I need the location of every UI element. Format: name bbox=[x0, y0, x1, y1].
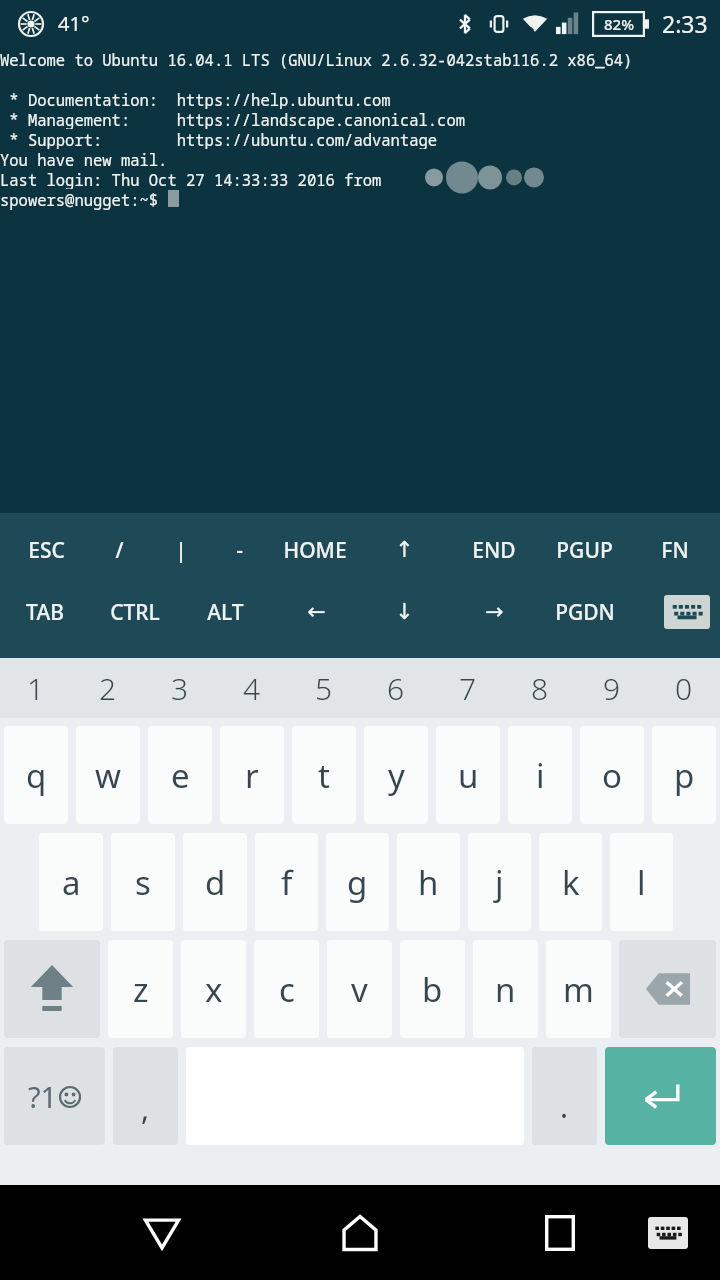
staticText: FN bbox=[661, 536, 689, 565]
button[interactable]: ↑ bbox=[366, 519, 442, 581]
button[interactable]: j bbox=[468, 833, 531, 931]
button[interactable]: END bbox=[456, 519, 532, 581]
button[interactable]: 8 bbox=[504, 658, 576, 718]
staticText: v bbox=[351, 967, 368, 1012]
button[interactable]: / bbox=[81, 519, 157, 581]
staticText: m bbox=[563, 967, 594, 1012]
staticText: 3 bbox=[171, 668, 189, 709]
button[interactable]: Recent apps bbox=[520, 1193, 600, 1273]
button[interactable]: Enter bbox=[605, 1047, 716, 1145]
button[interactable]: z bbox=[108, 940, 173, 1038]
button[interactable]: | bbox=[143, 519, 219, 581]
button[interactable]: m bbox=[546, 940, 611, 1038]
button[interactable]: Back bbox=[122, 1193, 202, 1273]
button[interactable]: s bbox=[111, 833, 175, 931]
button[interactable]: l bbox=[610, 833, 673, 931]
staticText: 9 bbox=[603, 668, 621, 709]
staticText: e bbox=[171, 753, 190, 798]
button[interactable]: d bbox=[183, 833, 247, 931]
staticText: ↑ bbox=[395, 537, 414, 563]
button[interactable]: f bbox=[255, 833, 318, 931]
button[interactable]: 6 bbox=[360, 658, 432, 718]
button[interactable]: Switch keyboard bbox=[636, 1201, 700, 1265]
button[interactable]: i bbox=[508, 726, 572, 824]
staticText: t bbox=[318, 753, 330, 798]
button[interactable]: ?1 bbox=[4, 1047, 105, 1145]
staticText: l bbox=[637, 860, 646, 905]
button[interactable]: o bbox=[580, 726, 644, 824]
staticText: 41° bbox=[58, 10, 90, 37]
staticText: , bbox=[141, 1088, 150, 1129]
staticText: b bbox=[422, 967, 443, 1012]
button[interactable]: Backspace bbox=[619, 940, 716, 1038]
button[interactable]: FN bbox=[637, 519, 713, 581]
staticText: 2:33 bbox=[662, 8, 708, 39]
button[interactable]: t bbox=[292, 726, 356, 824]
button[interactable]: a bbox=[39, 833, 103, 931]
button[interactable]: 2 bbox=[72, 658, 144, 718]
button[interactable]: 7 bbox=[432, 658, 504, 718]
button[interactable]: h bbox=[397, 833, 460, 931]
button[interactable]: Shift bbox=[4, 940, 100, 1038]
button[interactable]: PGUP bbox=[546, 519, 622, 581]
button[interactable]: c bbox=[254, 940, 319, 1038]
button[interactable]: Welcome to Ubuntu 16.04.1 LTS (GNU/Linux… bbox=[0, 46, 720, 513]
staticText: h bbox=[418, 860, 439, 905]
button[interactable]: ← bbox=[278, 581, 354, 643]
staticText: ← bbox=[307, 599, 326, 625]
staticText: w bbox=[95, 753, 121, 798]
staticText: ESC bbox=[28, 536, 65, 565]
staticText: r bbox=[245, 753, 259, 798]
staticText: 5 bbox=[315, 668, 333, 709]
button[interactable]: w bbox=[76, 726, 140, 824]
button[interactable]: Home bbox=[320, 1193, 400, 1273]
button[interactable]: 4 bbox=[216, 658, 288, 718]
staticText: n bbox=[495, 967, 516, 1012]
button[interactable]: v bbox=[327, 940, 392, 1038]
staticText: z bbox=[133, 967, 149, 1012]
staticText: k bbox=[562, 860, 580, 905]
button[interactable]: e bbox=[148, 726, 212, 824]
staticText: spowers@nugget:~$ bbox=[0, 189, 168, 210]
staticText: → bbox=[485, 599, 504, 625]
button[interactable]: , bbox=[113, 1047, 178, 1145]
staticText: f bbox=[281, 860, 293, 905]
button[interactable]: 5 bbox=[288, 658, 360, 718]
button[interactable]: u bbox=[436, 726, 500, 824]
button[interactable]: CTRL bbox=[97, 581, 173, 643]
button[interactable]: 3 bbox=[144, 658, 216, 718]
button[interactable]: q bbox=[4, 726, 68, 824]
staticText: * Support: https://ubuntu.com/advantage bbox=[0, 129, 438, 149]
button[interactable]: ↓ bbox=[366, 581, 442, 643]
button[interactable]: 1 bbox=[0, 658, 72, 718]
button[interactable]: PGDN bbox=[547, 581, 623, 643]
button[interactable]: - bbox=[201, 519, 277, 581]
staticText: . bbox=[560, 1086, 569, 1127]
staticText: / bbox=[115, 536, 124, 565]
button[interactable]: TAB bbox=[7, 581, 83, 643]
button[interactable]: Hide keyboard bbox=[664, 595, 710, 629]
button[interactable]: 9 bbox=[576, 658, 648, 718]
staticText: p bbox=[674, 753, 695, 798]
button[interactable]: y bbox=[364, 726, 428, 824]
staticText: CTRL bbox=[110, 598, 160, 627]
button[interactable]: n bbox=[473, 940, 538, 1038]
button[interactable]: ESC bbox=[8, 519, 84, 581]
button[interactable]: b bbox=[400, 940, 465, 1038]
button[interactable]: k bbox=[539, 833, 602, 931]
staticText: ↓ bbox=[395, 599, 414, 625]
staticText: 1 bbox=[27, 668, 45, 709]
button[interactable]: ALT bbox=[187, 581, 263, 643]
button[interactable]: x bbox=[181, 940, 246, 1038]
button[interactable]: g bbox=[326, 833, 389, 931]
button[interactable]: . bbox=[532, 1047, 597, 1145]
staticText: ALT bbox=[207, 598, 244, 627]
button[interactable]: 0 bbox=[648, 658, 720, 718]
staticText: You have new mail. bbox=[0, 149, 168, 169]
button[interactable]: p bbox=[652, 726, 716, 824]
button[interactable]: → bbox=[456, 581, 532, 643]
button[interactable]: HOME bbox=[277, 519, 353, 581]
staticText: PGDN bbox=[555, 598, 615, 627]
button[interactable]: r bbox=[220, 726, 284, 824]
